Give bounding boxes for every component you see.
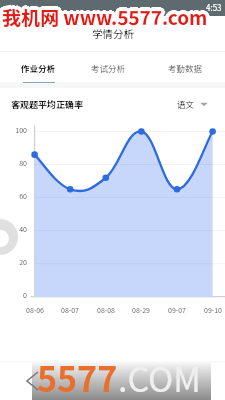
- button[interactable]: 作业分析: [12, 55, 64, 84]
- staticText: 0: [0, 290, 27, 300]
- staticText: 我机网 www.5577.com: [4, 6, 210, 34]
- staticText: 我机网 www.5577.com: [2, 7, 208, 35]
- staticText: 我机网 www.5577.com: [5, 3, 211, 31]
- staticText: 08-08: [97, 305, 115, 315]
- staticText: 4:53: [206, 2, 222, 14]
- staticText: 我机网 www.5577.com: [4, 1, 210, 29]
- staticText: 我机网 www.5577.com: [2, 0, 208, 28]
- staticText: 我机网 www.5577.com: [4, 3, 210, 31]
- staticText: 我机网 www.5577.com: [5, 2, 211, 30]
- staticText: 我机网 www.5577.com: [1, 0, 207, 28]
- staticText: 80: [0, 158, 27, 168]
- staticText: 我机网 www.5577.com: [0, 2, 205, 30]
- staticText: 我机网 www.5577.com: [3, 5, 209, 33]
- staticText: 我机网 www.5577.com: [0, 2, 206, 30]
- staticText: 40: [0, 224, 27, 234]
- staticText: 我机网 www.5577.com: [2, 3, 208, 31]
- staticText: 我机网 www.5577.com: [2, 2, 208, 30]
- staticText: 100: [0, 125, 27, 135]
- staticText: 我机网 www.5577.com: [3, 3, 209, 31]
- staticText: 我机网 www.5577.com: [6, 3, 212, 31]
- staticText: 我机网 www.5577.com: [2, 3, 208, 31]
- staticText: 我机网 www.5577.com: [2, 5, 208, 33]
- staticText: 我机网 www.5577.com: [4, 5, 210, 33]
- button[interactable]: 考试分析: [82, 55, 134, 84]
- staticText: 我机网 www.5577.com: [0, 1, 205, 29]
- staticText: 20: [0, 257, 27, 267]
- staticText: 我机网 www.5577.com: [0, 4, 206, 32]
- staticText: 我机网 www.5577.com: [4, 2, 210, 30]
- staticText: 我机网 www.5577.com: [3, 1, 209, 29]
- staticText: 我机网 www.5577.com: [2, 1, 208, 29]
- staticText: 我机网 www.5577.com: [5, 1, 211, 29]
- staticText: 语文: [177, 98, 195, 110]
- staticText: 我机网 www.5577.com: [3, 0, 209, 28]
- staticText: 我机网 www.5577.com: [3, 4, 209, 32]
- staticText: 我机网 www.5577.com: [1, 3, 207, 31]
- staticText: 我机网 www.5577.com: [5, 5, 211, 33]
- staticText: 我机网 www.5577.com: [0, 3, 206, 31]
- staticText: 我机网 www.5577.com: [0, 0, 206, 28]
- staticText: 5577: [37, 353, 118, 400]
- staticText: 我机网 www.5577.com: [0, 6, 206, 34]
- button[interactable]: 语文: [174, 95, 211, 113]
- button[interactable]: 考勤数据: [159, 55, 211, 84]
- staticText: 考勤数据: [168, 62, 203, 74]
- staticText: 我机网 www.5577.com: [5, 4, 211, 32]
- staticText: 我机网 www.5577.com: [0, 3, 204, 31]
- staticText: 我机网 www.5577.com: [4, 0, 210, 28]
- staticText: 我机网 www.5577.com: [2, 4, 208, 32]
- staticText: 我机网 www.5577.com: [1, 4, 207, 32]
- staticText: 我机网 www.5577.com: [2, 0, 208, 27]
- staticText: 我机网 www.5577.com: [0, 5, 206, 33]
- staticText: 08-29: [132, 305, 150, 315]
- staticText: 考试分析: [91, 62, 126, 74]
- staticText: 我机网 www.5577.com: [3, 6, 209, 34]
- staticText: 08-07: [61, 305, 79, 315]
- staticText: 我机网 www.5577.com: [1, 5, 207, 33]
- staticText: 我机网 www.5577.com: [1, 6, 207, 34]
- staticText: 60: [0, 191, 27, 201]
- staticText: 我机网 www.5577.com: [4, 4, 210, 32]
- staticText: 作业分析: [21, 62, 56, 74]
- staticText: 我机网 www.5577.com: [0, 4, 205, 32]
- staticText: 我机网 www.5577.com: [2, 6, 208, 34]
- staticText: .COM: [118, 353, 201, 400]
- staticText: 我机网 www.5577.com: [1, 1, 207, 29]
- staticText: 我机网 www.5577.com: [0, 3, 205, 31]
- staticText: 客观题平均正确率: [11, 98, 84, 111]
- staticText: 08-06: [26, 305, 44, 315]
- staticText: 我机网 www.5577.com: [0, 1, 206, 29]
- staticText: 学情分析: [92, 26, 134, 41]
- staticText: 我机网 www.5577.com: [1, 2, 207, 30]
- staticText: 我机网 www.5577.com: [0, 5, 205, 33]
- staticText: 09-07: [168, 305, 186, 315]
- staticText: 我机网 www.5577.com: [3, 2, 209, 30]
- staticText: 09-10: [204, 305, 222, 315]
